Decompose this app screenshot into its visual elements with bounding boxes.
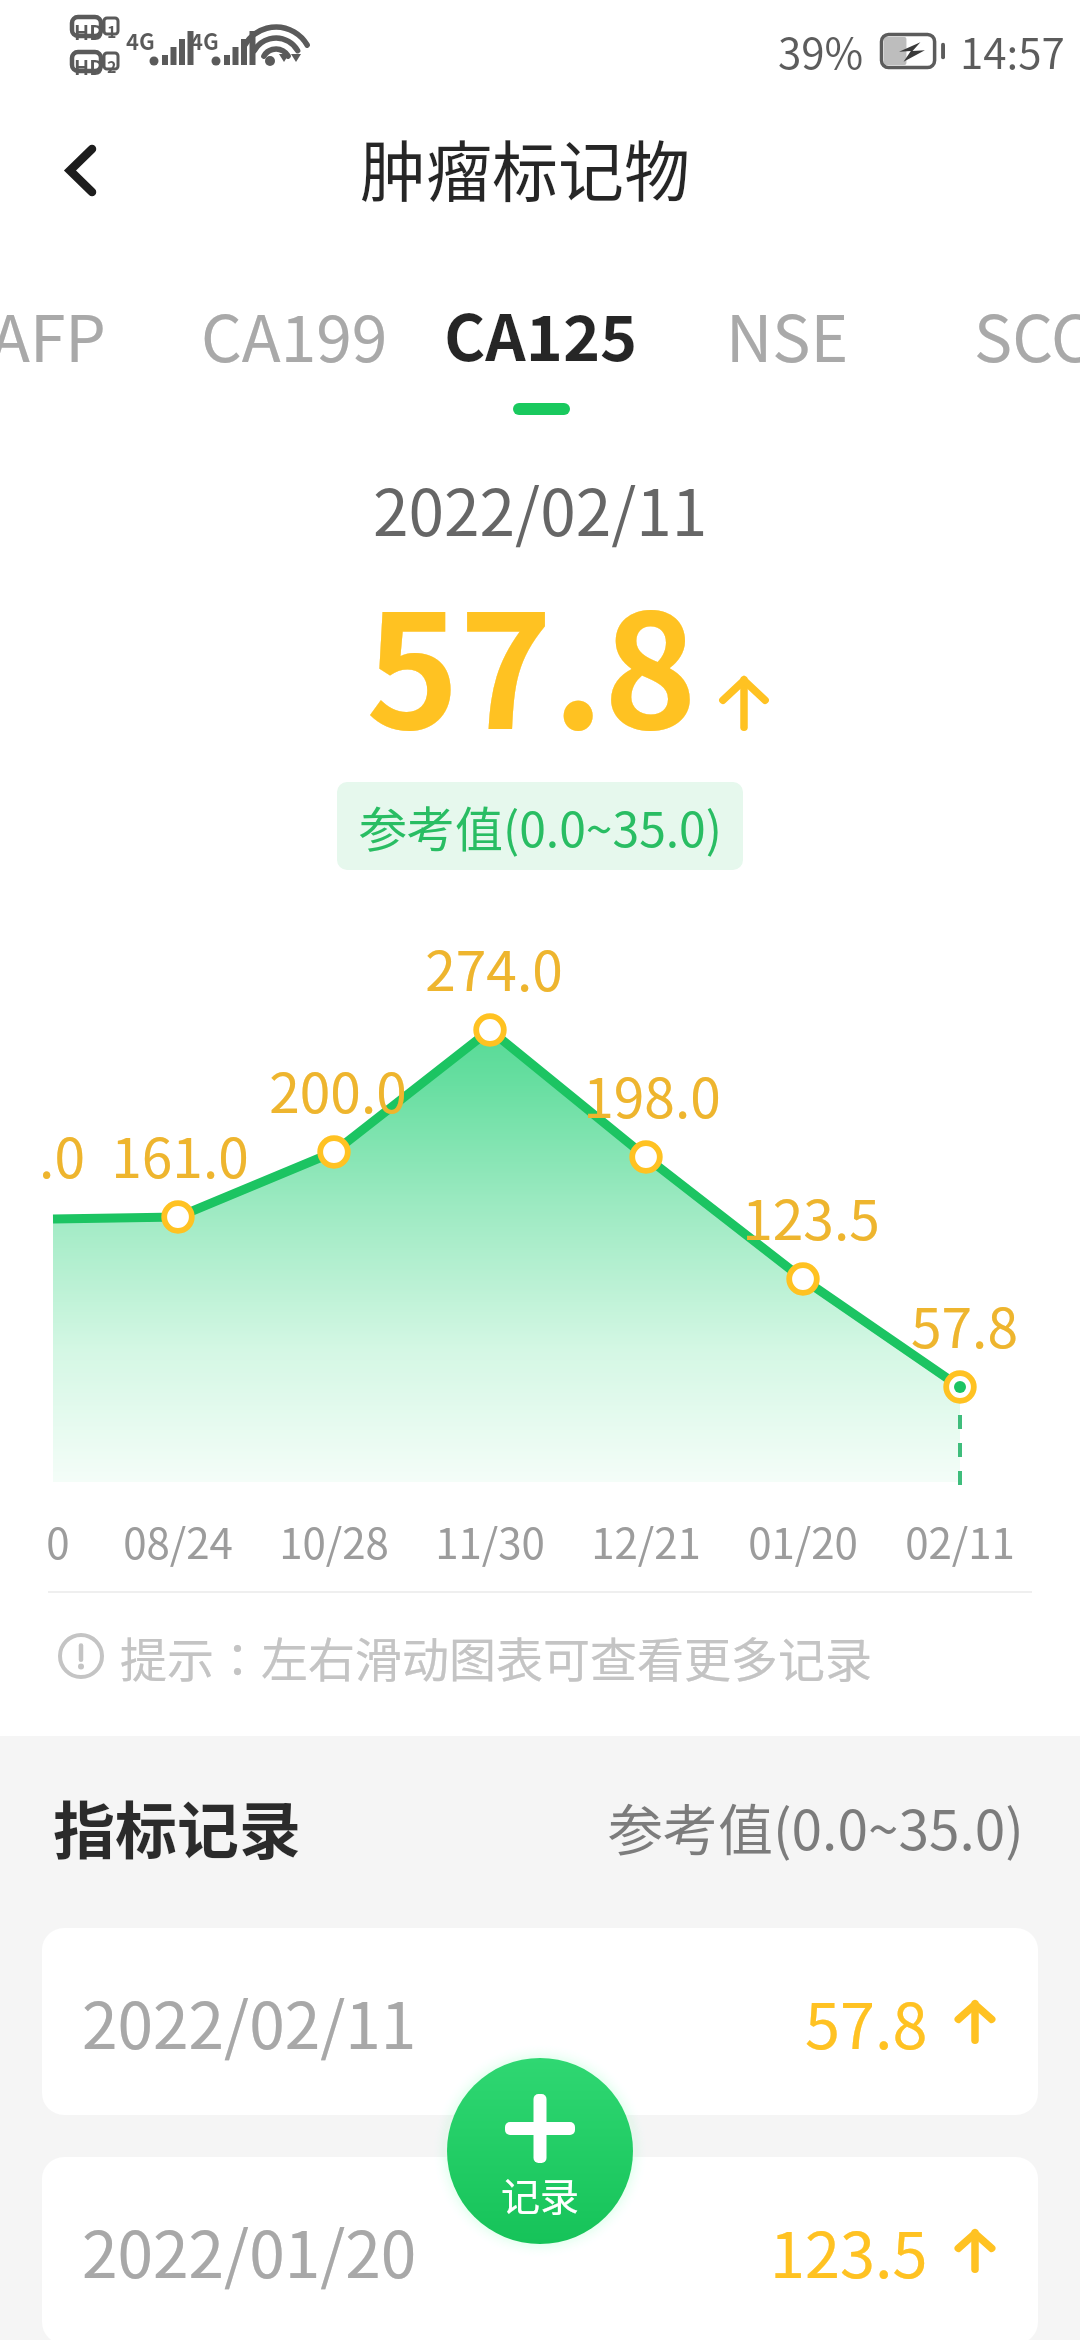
- staticText: 57.8: [805, 1976, 928, 2067]
- staticText: 2: [107, 54, 117, 77]
- staticText: 123.5: [742, 1176, 880, 1256]
- staticText: 11/30: [435, 1510, 545, 1571]
- staticText: 0: [46, 1510, 70, 1571]
- staticText: 14:57: [960, 20, 1065, 81]
- staticText: 274.0: [425, 927, 563, 1007]
- staticText: 12/21: [591, 1510, 701, 1571]
- button[interactable]: 2022/02/11: [42, 1928, 1038, 2115]
- button[interactable]: AFP: [0, 288, 166, 418]
- staticText: 57.8: [911, 1284, 1018, 1364]
- staticText: 57.8: [366, 546, 698, 775]
- button[interactable]: CA125: [423, 288, 659, 418]
- staticText: 10/28: [279, 1510, 389, 1571]
- staticText: HD: [74, 17, 104, 46]
- staticText: NSE: [726, 288, 849, 381]
- staticText: .0: [39, 1114, 85, 1194]
- staticText: 指标记录: [53, 1782, 302, 1872]
- staticText: 2022/02/11: [373, 462, 708, 555]
- staticText: 161.0: [111, 1114, 249, 1194]
- button[interactable]: SCC: [915, 288, 1080, 418]
- staticText: 123.5: [770, 2205, 928, 2296]
- button[interactable]: Back: [26, 115, 136, 225]
- staticText: SCC: [974, 288, 1080, 381]
- staticText: 参考值(0.0~35.0): [359, 791, 722, 861]
- staticText: AFP: [0, 288, 106, 381]
- staticText: 2022/02/11: [82, 1975, 417, 2068]
- staticText: CA199: [201, 288, 388, 381]
- staticText: 4G: [126, 24, 155, 56]
- button[interactable]: 2022/01/20: [42, 2157, 1038, 2340]
- staticText: HD: [74, 52, 104, 81]
- staticText: 01/20: [748, 1510, 858, 1571]
- staticText: 4G: [190, 24, 219, 56]
- staticText: 参考值(0.0~35.0): [608, 1786, 1024, 1866]
- button[interactable]: NSE: [669, 288, 905, 418]
- staticText: CA125: [444, 288, 638, 379]
- staticText: 肿瘤标记物: [360, 119, 690, 215]
- staticText: 记录: [501, 2166, 580, 2222]
- staticText: 08/24: [123, 1510, 233, 1571]
- staticText: 2022/01/20: [82, 2204, 417, 2297]
- staticText: 1: [107, 19, 117, 42]
- staticText: 02/11: [905, 1510, 1015, 1571]
- staticText: 198.0: [583, 1054, 721, 1134]
- staticText: 提示：左右滑动图表可查看更多记录: [120, 1622, 872, 1690]
- staticText: 39%: [778, 20, 864, 81]
- button[interactable]: CA199: [176, 288, 412, 418]
- staticText: 200.0: [269, 1049, 407, 1129]
- button[interactable]: 添加记录: [447, 2058, 633, 2244]
